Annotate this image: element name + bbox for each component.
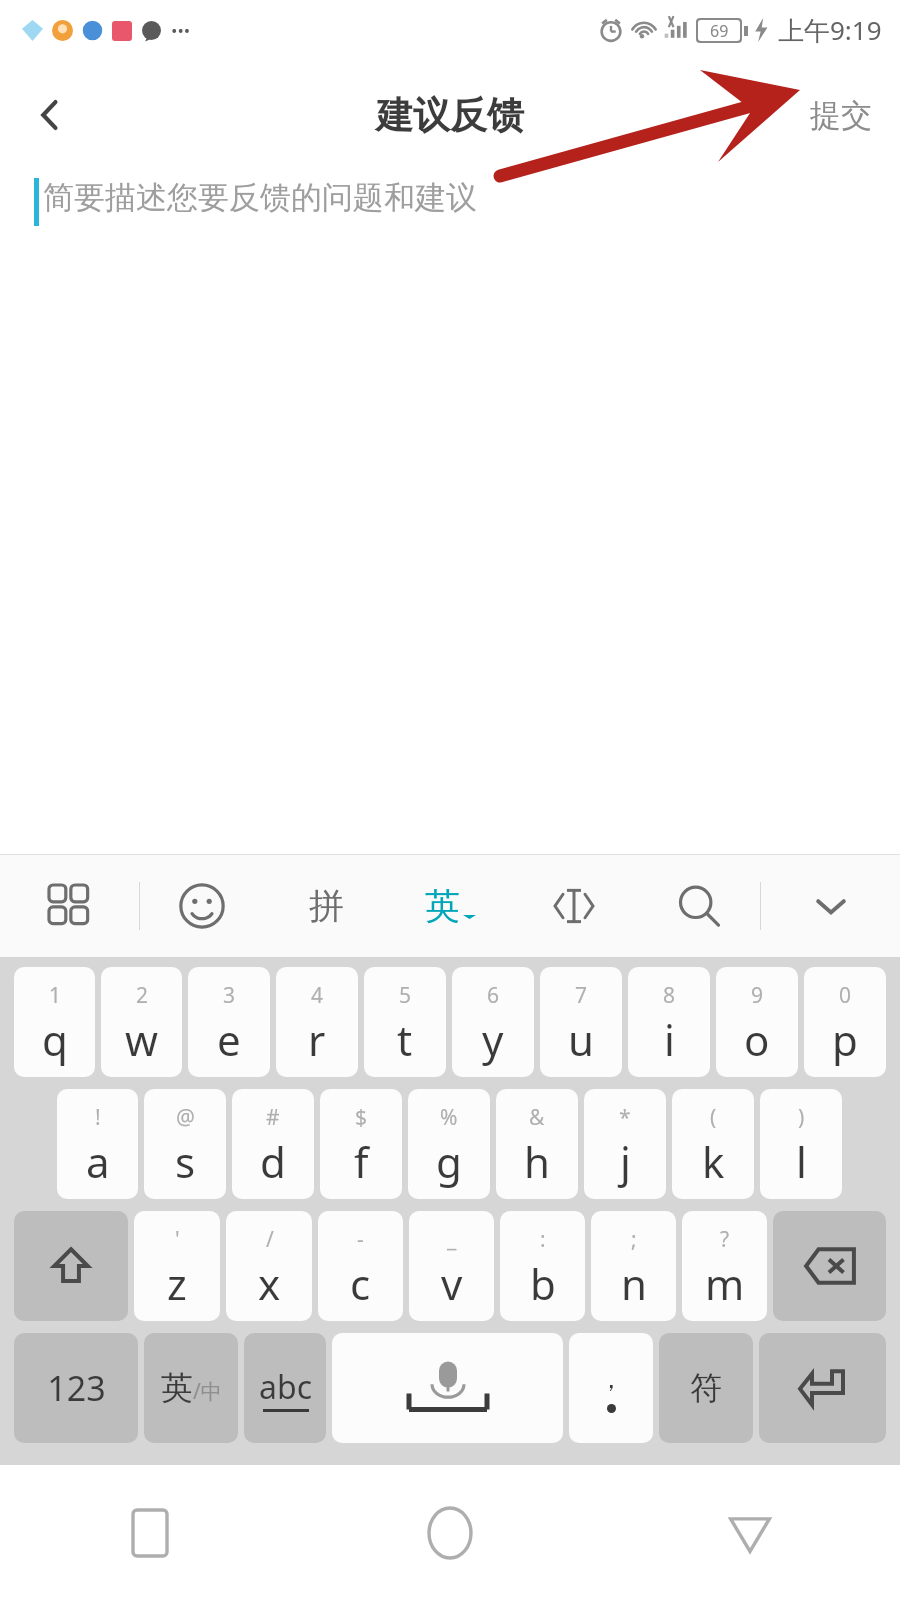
staticText: z [167, 1255, 187, 1312]
button[interactable]: $ [320, 1089, 402, 1199]
staticText: ) [798, 1103, 805, 1132]
button[interactable]: 符 [659, 1333, 753, 1443]
button[interactable]: 0 [804, 967, 886, 1077]
button[interactable]: 回车 [759, 1333, 886, 1443]
button[interactable]: : [500, 1211, 585, 1321]
staticText: - [357, 1225, 364, 1254]
staticText: & [529, 1103, 545, 1132]
staticText: 5 [399, 981, 412, 1010]
staticText: @ [176, 1103, 195, 1132]
staticText: % [440, 1103, 458, 1132]
button[interactable]: & [496, 1089, 578, 1199]
staticText: s [175, 1133, 196, 1190]
button[interactable]: 拼 [264, 855, 388, 957]
button[interactable]: % [408, 1089, 490, 1199]
button[interactable]: - [318, 1211, 403, 1321]
button[interactable]: 返回 [600, 1465, 900, 1600]
button[interactable]: ' [134, 1211, 220, 1321]
staticText: j [620, 1133, 631, 1190]
staticText: 1 [49, 981, 62, 1010]
staticText: r [308, 1011, 326, 1068]
staticText: 上午9:19 [778, 12, 882, 48]
button[interactable]: 9 [716, 967, 798, 1077]
staticText: x [258, 1255, 281, 1312]
staticText: p [832, 1011, 858, 1068]
staticText: ••• [171, 19, 191, 42]
staticText: * [619, 1103, 631, 1132]
staticText: 3 [223, 981, 236, 1010]
button[interactable]: Apps [0, 855, 139, 957]
button[interactable]: 主页 [300, 1465, 600, 1600]
button[interactable]: 5 [364, 967, 446, 1077]
button[interactable]: 1 [14, 967, 95, 1077]
staticText: 69 [710, 20, 729, 41]
button[interactable]: 2 [101, 967, 182, 1077]
staticText: / [266, 1225, 274, 1254]
button[interactable]: Shift [14, 1211, 128, 1321]
button[interactable]: 中英文切换 [144, 1333, 238, 1443]
button[interactable]: 8 [628, 967, 710, 1077]
staticText: 拼 [309, 884, 344, 928]
staticText: ! [95, 1103, 101, 1132]
button[interactable]: 3 [188, 967, 270, 1077]
button[interactable]: 123 [14, 1333, 138, 1443]
button[interactable]: 7 [540, 967, 622, 1077]
staticText: 简要描述您要反馈的问题和建议 [43, 178, 477, 217]
staticText: 8 [663, 981, 676, 1010]
button[interactable]: ! [57, 1089, 138, 1199]
staticText: 英 [425, 884, 460, 928]
staticText: i [664, 1011, 675, 1068]
staticText: a [86, 1133, 110, 1190]
button[interactable]: 收起键盘 [761, 855, 900, 957]
staticText: y [482, 1011, 504, 1068]
staticText: 提交 [810, 96, 872, 135]
staticText: : [540, 1225, 546, 1254]
staticText: k [702, 1133, 725, 1190]
button[interactable]: abc [244, 1333, 326, 1443]
staticText: t [397, 1011, 413, 1068]
button[interactable]: 表情 [140, 855, 264, 957]
staticText: o [744, 1011, 770, 1068]
staticText: 2 [136, 981, 149, 1010]
button[interactable]: _ [409, 1211, 494, 1321]
staticText: 0 [839, 981, 852, 1010]
staticText: g [436, 1133, 462, 1190]
button[interactable]: 6 [452, 967, 534, 1077]
staticText: h [524, 1133, 550, 1190]
staticText: 符 [690, 1368, 722, 1408]
button[interactable]: ) [760, 1089, 842, 1199]
staticText: q [42, 1011, 68, 1068]
staticText: n [621, 1255, 647, 1312]
button[interactable]: ( [672, 1089, 754, 1199]
button[interactable]: / [226, 1211, 312, 1321]
button[interactable]: 4 [276, 967, 358, 1077]
button[interactable]: 提交 [782, 60, 900, 170]
staticText: $ [355, 1103, 368, 1132]
staticText: ( [710, 1103, 717, 1132]
button[interactable]: 逗号句号 [569, 1333, 653, 1443]
staticText: e [217, 1011, 241, 1068]
button[interactable]: 最近任务 [0, 1465, 300, 1600]
button[interactable]: ; [591, 1211, 676, 1321]
button[interactable]: @ [144, 1089, 226, 1199]
button[interactable]: 光标移动 [512, 855, 636, 957]
staticText: ， [598, 1363, 624, 1396]
staticText: abc [259, 1365, 312, 1409]
button[interactable]: 删除 [773, 1211, 886, 1321]
staticText: b [530, 1255, 556, 1312]
staticText: f [354, 1133, 369, 1190]
staticText: ' [175, 1225, 180, 1254]
staticText: u [568, 1011, 594, 1068]
button[interactable]: 返回 [0, 60, 100, 170]
button[interactable]: 搜索 [636, 855, 760, 957]
staticText: w [125, 1011, 159, 1068]
button[interactable]: 英 [388, 855, 512, 957]
staticText: 英 [161, 1368, 193, 1408]
button[interactable]: 简要描述您要反馈的问题和建议 [0, 170, 900, 280]
staticText: 123 [47, 1365, 106, 1411]
button[interactable]: # [232, 1089, 314, 1199]
button[interactable]: 空格 [332, 1333, 563, 1443]
button[interactable]: ? [682, 1211, 767, 1321]
staticText: d [260, 1133, 286, 1190]
button[interactable]: * [584, 1089, 666, 1199]
